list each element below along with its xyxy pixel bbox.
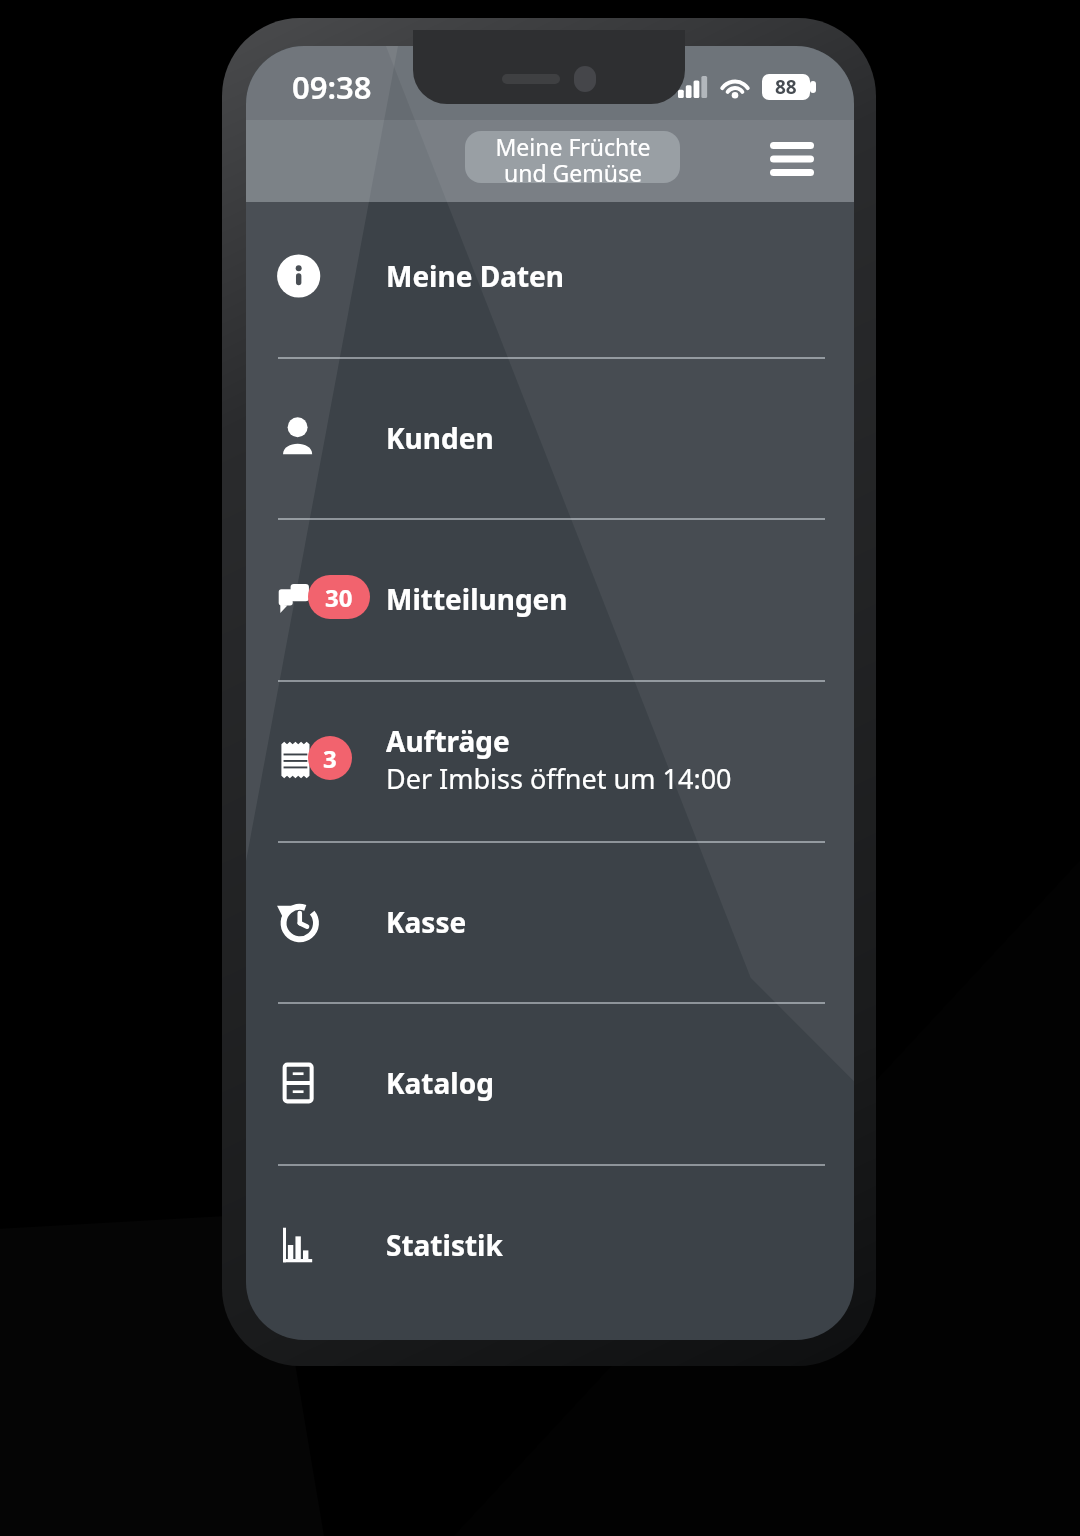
staticText: Katalog [386,1064,494,1102]
staticText: 30 [325,581,353,614]
staticText: 88 [775,74,797,100]
button[interactable]: 3 [246,679,854,840]
button[interactable]: Menü [756,126,828,192]
button[interactable]: Kasse [246,841,854,1002]
staticText: Statistik [386,1226,503,1264]
button[interactable]: Statistik [246,1164,854,1325]
staticText: Der Imbiss öffnet um 14:00 [386,760,732,797]
button[interactable]: Meine Daten [246,195,854,356]
staticText: 09:38 [292,66,372,108]
staticText: Meine Früchte und Gemüse [495,131,651,183]
staticText: Mitteilungen [386,580,568,618]
button[interactable]: Katalog [246,1002,854,1163]
staticText: Kunden [386,419,494,457]
staticText: Kasse [386,903,467,941]
button[interactable]: 30 [246,518,854,679]
button[interactable]: Kunden [246,357,854,518]
staticText: Meine Daten [386,257,565,295]
button[interactable]: Meine Früchte und Gemüse [465,131,680,183]
staticText: 3 [323,742,337,775]
staticText: Aufträge [386,722,510,760]
